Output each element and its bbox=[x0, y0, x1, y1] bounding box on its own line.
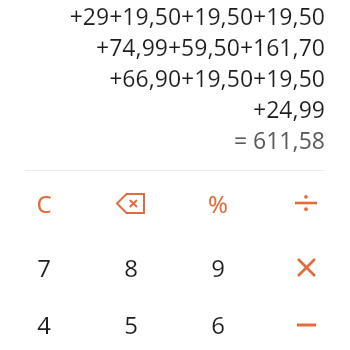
button[interactable]: C bbox=[0, 171, 87, 235]
staticText: 9 bbox=[211, 251, 225, 284]
staticText: 4 bbox=[37, 308, 51, 341]
button[interactable]: 5 bbox=[87, 299, 174, 350]
staticText: 7 bbox=[37, 251, 51, 284]
button[interactable]: 8 bbox=[87, 235, 174, 299]
button[interactable]: Divide bbox=[262, 171, 350, 235]
staticText: 6 bbox=[211, 308, 225, 341]
staticText: C bbox=[36, 187, 52, 220]
button[interactable]: % bbox=[174, 171, 262, 235]
staticText: % bbox=[208, 187, 228, 220]
button[interactable]: 7 bbox=[0, 235, 87, 299]
button[interactable]: 4 bbox=[0, 299, 87, 350]
staticText: +74,99+59,50+161,70 bbox=[24, 31, 325, 62]
button[interactable]: Multiply bbox=[262, 235, 350, 299]
staticText: = 611,58 bbox=[24, 124, 325, 155]
staticText: 5 bbox=[124, 308, 138, 341]
staticText: 8 bbox=[124, 251, 138, 284]
staticText: +66,90+19,50+19,50 bbox=[24, 62, 325, 93]
button[interactable]: Backspace bbox=[87, 171, 174, 235]
button[interactable]: 6 bbox=[174, 299, 262, 350]
button[interactable]: 9 bbox=[174, 235, 262, 299]
staticText: +24,99 bbox=[24, 93, 325, 124]
button[interactable]: Minus bbox=[262, 299, 350, 350]
staticText: +29+19,50+19,50+19,50 bbox=[24, 0, 325, 31]
